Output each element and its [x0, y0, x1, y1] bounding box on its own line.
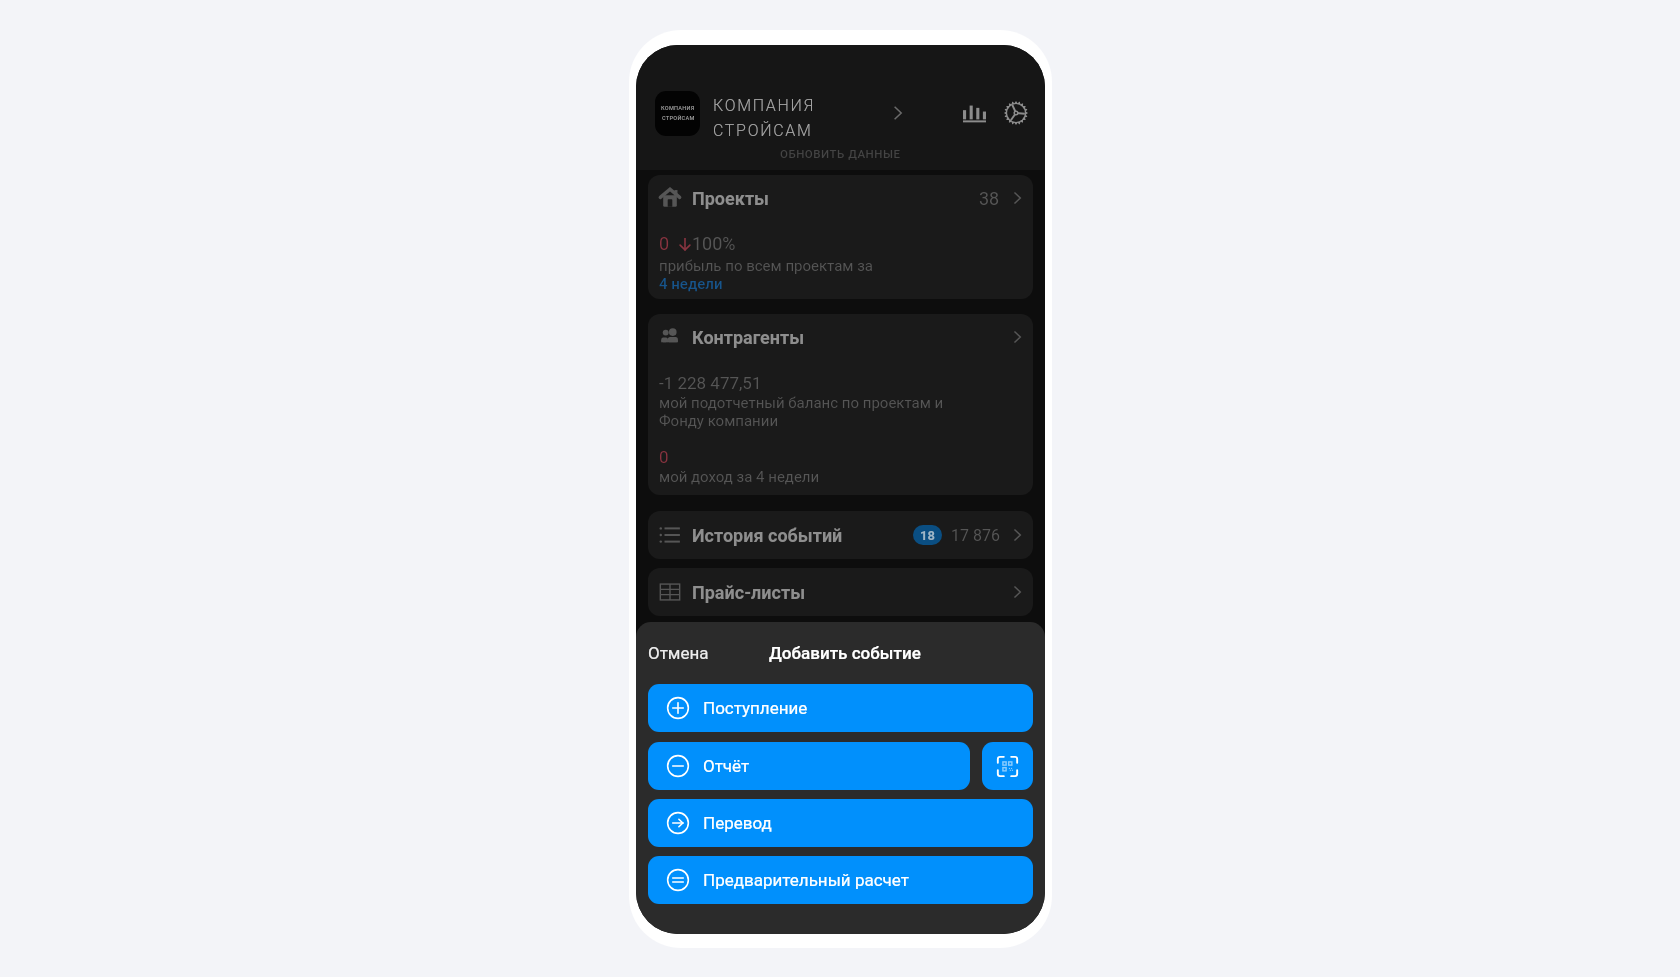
staticText: Отмена [648, 643, 709, 663]
staticText: -1 228 477,51 [659, 373, 762, 393]
staticText: 18 [920, 528, 935, 543]
staticText: Прайс-листы [692, 582, 806, 603]
button[interactable]: Проекты [648, 175, 1033, 299]
staticText: КОМПАНИЯ [713, 96, 816, 115]
staticText: Контрагенты [692, 327, 805, 348]
staticText: 0 [659, 233, 670, 254]
button[interactable]: Поступление [648, 684, 1033, 732]
button[interactable]: Statistics [957, 96, 991, 130]
staticText: прибыль по всем проектам за [659, 257, 873, 275]
staticText: ОБНОВИТЬ ДАННЫЕ [780, 147, 901, 160]
button[interactable]: Перевод [648, 799, 1033, 847]
button[interactable]: Контрагенты [648, 314, 1033, 495]
staticText: Перевод [703, 813, 772, 833]
button[interactable]: Settings [999, 96, 1033, 130]
button[interactable]: Отмена [648, 643, 709, 663]
staticText: 4 недели [659, 275, 723, 293]
staticText: Добавить событие [769, 643, 921, 663]
button[interactable]: Прайс-листы [648, 568, 1033, 616]
staticText: 38 [979, 188, 1000, 209]
button[interactable]: История событий [648, 511, 1033, 559]
staticText: 17 876 [951, 526, 1000, 545]
staticText: СТРОЙСАМ [713, 121, 813, 136]
button[interactable]: Предварительный расчет [648, 856, 1033, 904]
staticText: Поступление [703, 698, 808, 718]
staticText: мой доход за 4 недели [659, 468, 820, 486]
staticText: КОМПАНИЯ [661, 105, 695, 112]
staticText: мой подотчетный баланс по проектам и [659, 394, 944, 412]
button[interactable]: Отчёт [648, 742, 970, 790]
staticText: 0 [659, 447, 669, 467]
staticText: Фонду компании [659, 412, 779, 430]
staticText: СТРОЙСАМ [662, 115, 695, 122]
staticText: 100% [692, 233, 736, 254]
staticText: Отчёт [703, 756, 750, 776]
staticText: Предварительный расчет [703, 870, 909, 890]
staticText: Проекты [692, 188, 769, 209]
button[interactable]: КОМПАНИЯ [655, 90, 957, 136]
staticText: История событий [692, 525, 843, 546]
button[interactable]: Scan QR code [982, 742, 1033, 790]
button[interactable]: ОБНОВИТЬ ДАННЫЕ [636, 138, 1045, 168]
